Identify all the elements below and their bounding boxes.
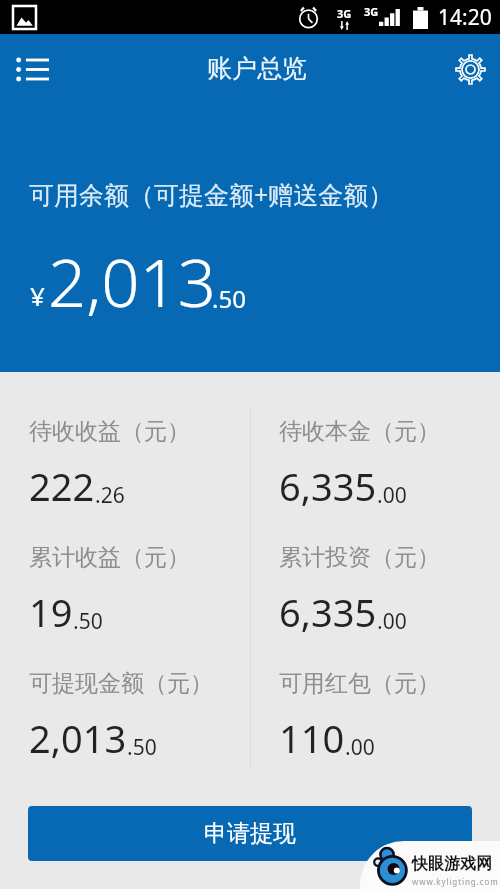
staticText: 6,335 (279, 586, 377, 638)
button[interactable]: 累计收益（元） (0, 527, 250, 653)
staticText: 222 (29, 460, 95, 512)
staticText: .50 (73, 607, 103, 636)
button[interactable]: 可提现金额（元） (0, 653, 250, 779)
button[interactable]: 累计投资（元） (250, 527, 500, 653)
button[interactable]: Settings (444, 43, 496, 95)
button[interactable]: 待收本金（元） (250, 401, 500, 527)
staticText: 3G (364, 4, 379, 19)
staticText: .00 (377, 607, 407, 636)
staticText: 待收本金（元） (279, 417, 440, 446)
staticText: .26 (95, 481, 125, 510)
staticText: 累计投资（元） (279, 543, 440, 572)
staticText: ¥ (30, 278, 45, 313)
staticText: 6,335 (279, 460, 377, 512)
staticText: 110 (279, 712, 345, 764)
staticText: 待收收益（元） (29, 417, 190, 446)
staticText: 可提现金额（元） (29, 669, 213, 698)
staticText: 可用余额（可提金额+赠送金额） (29, 177, 394, 211)
staticText: 累计收益（元） (29, 543, 190, 572)
staticText: 3G (337, 6, 352, 21)
staticText: 2,013 (29, 712, 127, 764)
staticText: .00 (377, 481, 407, 510)
staticText: 19 (29, 586, 73, 638)
staticText: 可用红包（元） (279, 669, 440, 698)
button[interactable]: Screenshot (12, 5, 37, 30)
staticText: 14:20 (438, 3, 492, 32)
staticText: .00 (345, 733, 375, 762)
staticText: 快眼游戏网 (412, 854, 492, 874)
staticText: .50 (127, 733, 157, 762)
button[interactable]: 可用红包（元） (250, 653, 500, 779)
staticText: 申请提现 (204, 819, 296, 848)
button[interactable]: Menu (6, 43, 58, 95)
staticText: www.kyligting.com (412, 876, 499, 887)
button[interactable]: 申请提现 (28, 806, 472, 861)
button[interactable]: 待收收益（元） (0, 401, 250, 527)
staticText: .50 (212, 282, 246, 315)
staticText: 2,013 (48, 235, 217, 326)
staticText: 账户总览 (207, 53, 307, 84)
